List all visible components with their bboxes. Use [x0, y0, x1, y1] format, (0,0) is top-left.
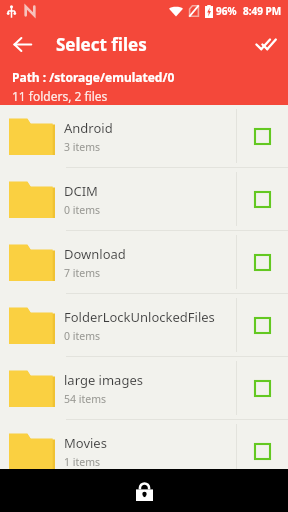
button[interactable]: Movies: [0, 420, 288, 483]
button[interactable]: Select large images: [237, 357, 288, 419]
staticText: Path : /storage/emulated/0: [12, 69, 175, 85]
staticText: 11 folders, 2 files: [12, 88, 108, 104]
button[interactable]: Select DCIM: [237, 168, 288, 230]
button[interactable]: large images: [0, 357, 288, 420]
button[interactable]: Select FolderLockUnlockedFiles: [237, 294, 288, 356]
staticText: 0 items: [64, 203, 101, 217]
staticText: 54 items: [64, 392, 107, 406]
staticText: FolderLockUnlockedFiles: [64, 308, 215, 326]
button[interactable]: FolderLockUnlockedFiles: [0, 294, 288, 357]
staticText: large images: [64, 371, 143, 389]
button[interactable]: Android: [0, 105, 288, 168]
staticText: 3 items: [64, 140, 101, 154]
staticText: 8:49 PM: [243, 4, 282, 18]
staticText: Android: [64, 119, 113, 137]
staticText: 7 items: [64, 266, 101, 280]
staticText: Select files: [56, 33, 147, 56]
button[interactable]: Lock: [124, 471, 164, 511]
button[interactable]: Back: [0, 22, 44, 66]
button[interactable]: DCIM: [0, 168, 288, 231]
button[interactable]: Select all: [244, 22, 288, 66]
button[interactable]: Music: [0, 483, 288, 512]
staticText: 96%: [216, 4, 237, 18]
staticText: Download: [64, 245, 126, 263]
button[interactable]: Select Movies: [237, 420, 288, 482]
button[interactable]: Download: [0, 231, 288, 294]
staticText: 1 items: [64, 455, 101, 469]
staticText: Movies: [64, 434, 107, 452]
button[interactable]: Select Android: [237, 105, 288, 167]
button[interactable]: Select Download: [237, 231, 288, 293]
staticText: 0 items: [64, 329, 101, 343]
staticText: DCIM: [64, 182, 98, 200]
